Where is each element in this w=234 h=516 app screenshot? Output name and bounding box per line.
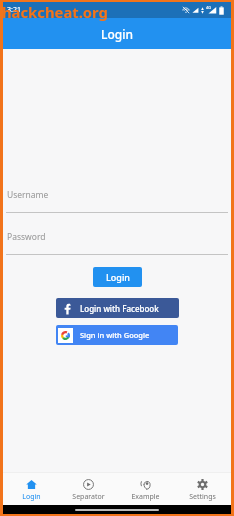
button[interactable]: Login — [93, 267, 142, 287]
staticText: 3:21 — [7, 5, 21, 15]
staticText: Sign in with Google — [80, 330, 150, 340]
staticText: Login — [22, 492, 41, 502]
staticText: Login — [106, 271, 130, 283]
staticText: Login — [101, 26, 133, 42]
staticText: Settings — [189, 492, 216, 502]
staticText: Username — [7, 189, 49, 201]
button[interactable]: Login with Facebook — [56, 298, 179, 318]
staticText: Password — [7, 231, 46, 243]
staticText: Login with Facebook — [80, 303, 159, 314]
staticText: Example — [131, 492, 160, 502]
button[interactable]: Separator — [60, 472, 117, 505]
button[interactable]: Login — [3, 472, 60, 505]
button[interactable]: Settings — [174, 472, 231, 505]
button[interactable]: Sign in with Google — [56, 325, 178, 345]
staticText: Separator — [72, 492, 105, 502]
button[interactable]: Example — [117, 472, 174, 505]
staticText: 4G — [206, 5, 212, 10]
staticText: hackcheat.org — [2, 2, 108, 22]
